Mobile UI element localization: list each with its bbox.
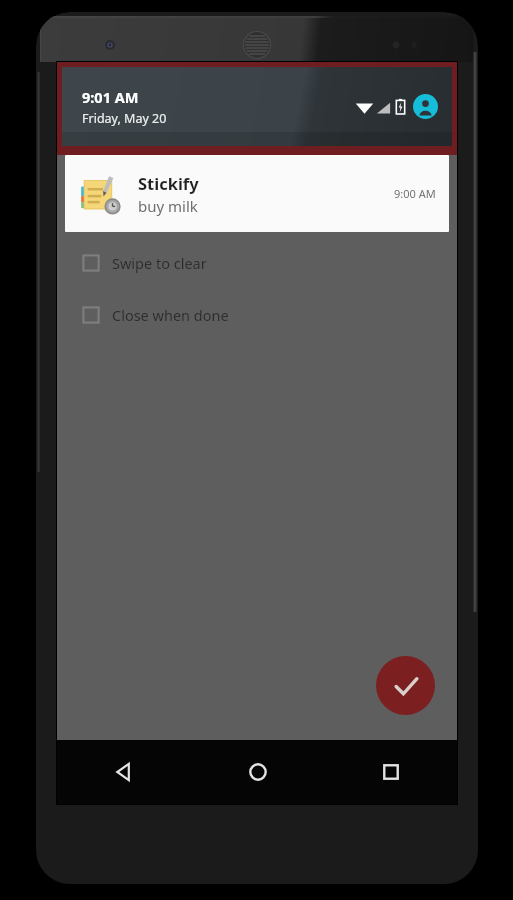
staticText: Close when done: [112, 305, 229, 325]
button[interactable]: Swipe to clear: [57, 246, 457, 280]
button[interactable]: User profile: [413, 94, 438, 119]
button[interactable]: Stickify: [65, 155, 449, 232]
staticText: Swipe to clear: [112, 253, 207, 273]
staticText: buy milk: [138, 196, 198, 216]
button[interactable]: Back: [57, 740, 191, 804]
staticText: 9:01 AM: [82, 87, 139, 107]
staticText: Stickify: [138, 172, 199, 194]
staticText: Friday, May 20: [82, 110, 167, 127]
button[interactable]: Done: [376, 656, 435, 715]
button[interactable]: Home: [191, 740, 324, 804]
staticText: 9:00 AM: [394, 186, 436, 201]
button[interactable]: Recents: [324, 740, 457, 804]
button[interactable]: Close when done: [57, 298, 457, 332]
